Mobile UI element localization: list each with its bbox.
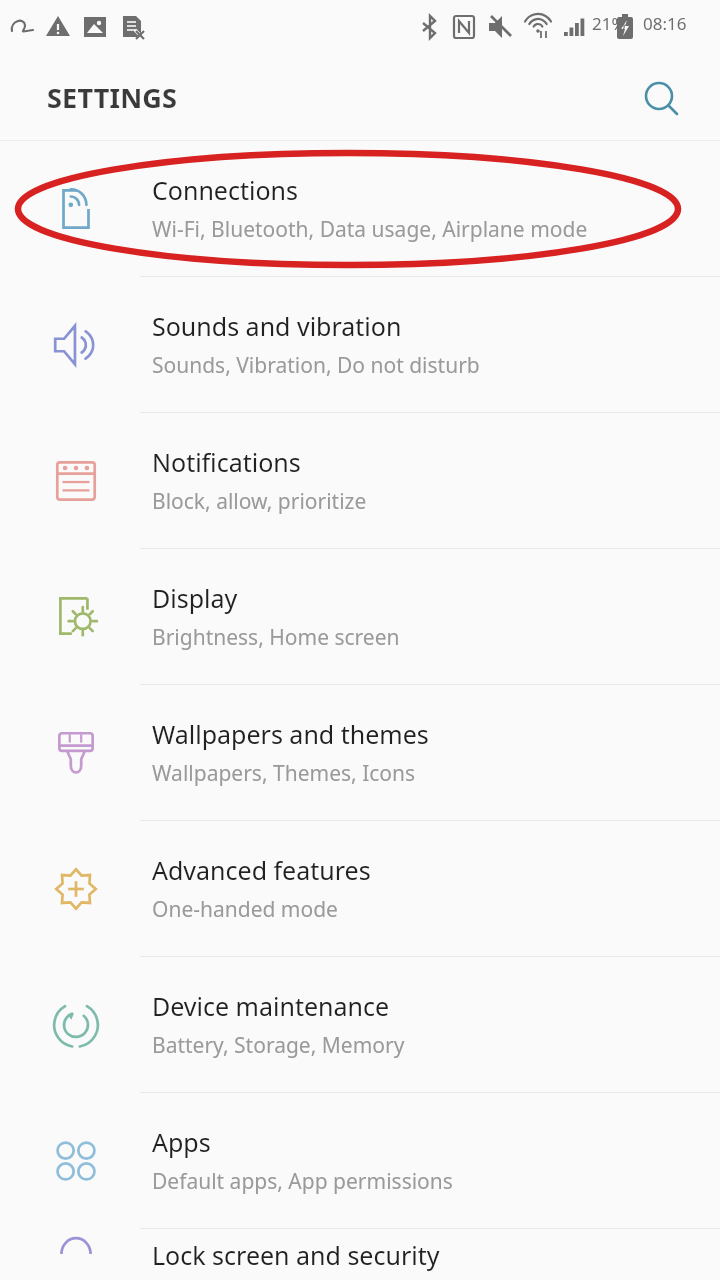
staticText: Lock screen and security (152, 1238, 440, 1272)
staticText: Block, allow, prioritize (152, 487, 367, 516)
staticText: Default apps, App permissions (152, 1167, 453, 1196)
staticText: SETTINGS (47, 79, 178, 116)
button[interactable]: Display (0, 549, 720, 684)
staticText: 08:16 (643, 12, 687, 35)
staticText: Wallpapers and themes (152, 717, 429, 751)
button[interactable]: Advanced features (0, 821, 720, 956)
button[interactable]: Lock screen and security (0, 1229, 720, 1280)
button[interactable]: Connections (0, 141, 720, 276)
staticText: Wi-Fi, Bluetooth, Data usage, Airplane m… (152, 215, 588, 244)
button[interactable]: Device maintenance (0, 957, 720, 1092)
staticText: Display (152, 581, 238, 615)
staticText: Apps (152, 1125, 211, 1159)
button[interactable]: Sounds and vibration (0, 277, 720, 412)
button[interactable]: Wallpapers and themes (0, 685, 720, 820)
staticText: Sounds and vibration (152, 309, 402, 343)
staticText: Connections (152, 173, 298, 207)
staticText: One-handed mode (152, 895, 338, 924)
staticText: Brightness, Home screen (152, 623, 400, 652)
button[interactable]: Search (638, 75, 684, 121)
staticText: Sounds, Vibration, Do not disturb (152, 351, 480, 380)
staticText: Wallpapers, Themes, Icons (152, 759, 416, 788)
staticText: Advanced features (152, 853, 371, 887)
staticText: Notifications (152, 445, 301, 479)
staticText: 21% (592, 12, 626, 35)
button[interactable]: Apps (0, 1093, 720, 1228)
button[interactable]: Notifications (0, 413, 720, 548)
staticText: Device maintenance (152, 989, 390, 1023)
staticText: Battery, Storage, Memory (152, 1031, 405, 1060)
